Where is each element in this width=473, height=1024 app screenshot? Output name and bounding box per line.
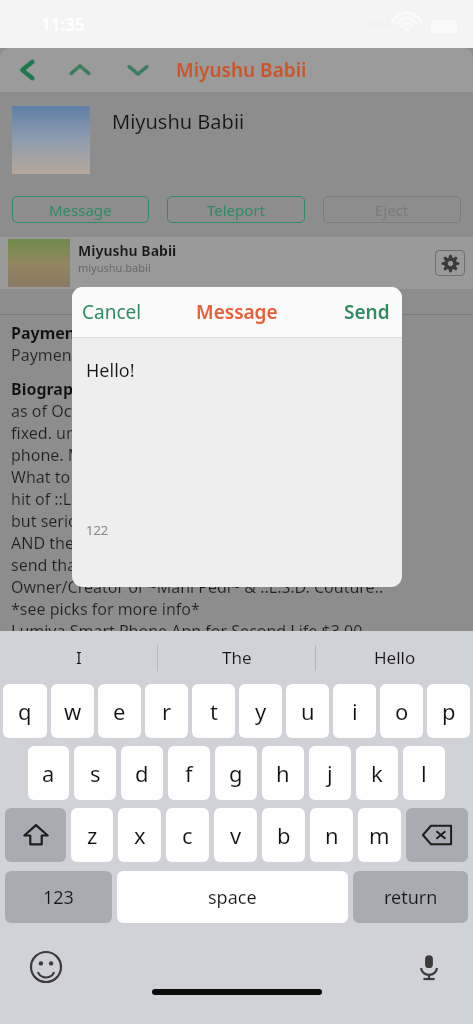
staticText: as of Oct 2016 my mic is broken, getting… — [11, 400, 327, 422]
staticText: n — [325, 820, 339, 850]
button[interactable]: x — [118, 808, 161, 862]
staticText: Lumiya Smart Phone App for Second Life $… — [11, 620, 363, 642]
button[interactable]: t — [192, 684, 235, 738]
button[interactable]: o — [380, 684, 423, 738]
staticText: hit of ::L.S.D. Couture:: - not a real d… — [11, 488, 303, 510]
button[interactable]: h — [262, 746, 304, 800]
button[interactable]: z — [71, 808, 113, 862]
button[interactable]: s — [74, 746, 116, 800]
staticText: 122 — [86, 521, 109, 539]
button[interactable]: Emoji — [30, 951, 62, 983]
button[interactable]: Settings — [435, 250, 465, 276]
button[interactable]: Message — [12, 196, 149, 223]
staticText: k — [371, 758, 383, 788]
button[interactable]: space — [117, 871, 348, 923]
staticText: p — [442, 696, 456, 726]
button[interactable]: i — [333, 684, 376, 738]
staticText: t — [210, 696, 218, 726]
button[interactable]: Back — [10, 53, 44, 87]
button[interactable]: l — [403, 746, 445, 800]
button[interactable]: Dictation — [415, 953, 443, 981]
staticText: Payment info on file — [11, 344, 162, 366]
button[interactable]: q — [3, 684, 47, 738]
button[interactable]: r — [145, 684, 188, 738]
staticText: x — [134, 820, 146, 850]
staticText: Miyushu Babii — [78, 241, 177, 260]
staticText: h — [276, 758, 290, 788]
button[interactable]: Picks — [215, 294, 245, 310]
staticText: u — [301, 696, 315, 726]
staticText: send that pic to your friends! — [11, 554, 228, 576]
button[interactable]: Eject — [323, 196, 461, 223]
staticText: Miyushu Babii — [176, 57, 307, 83]
button[interactable]: j — [309, 746, 351, 800]
button[interactable]: u — [286, 684, 329, 738]
staticText: Message — [49, 200, 112, 220]
staticText: i — [352, 696, 358, 726]
staticText: j — [327, 758, 333, 788]
staticText: z — [87, 820, 98, 850]
staticText: What to do if you're bored? Go and take … — [11, 466, 322, 488]
staticText: m — [369, 820, 390, 850]
button[interactable]: Send — [344, 299, 390, 325]
button[interactable]: Hello! — [72, 338, 402, 587]
staticText: Miyushu Babii — [112, 108, 245, 135]
staticText: r — [162, 696, 172, 726]
button[interactable]: Next — [121, 53, 155, 87]
button[interactable]: Groups — [337, 294, 380, 310]
button[interactable]: b — [262, 808, 305, 862]
staticText: *see picks for more info* — [11, 598, 200, 620]
button[interactable]: Previous — [63, 53, 97, 87]
staticText: but seriously fashionable stuff anyway — [11, 510, 299, 532]
button[interactable]: I — [0, 631, 157, 684]
staticText: Teleport — [207, 200, 265, 220]
staticText: Cancel — [82, 299, 142, 325]
button[interactable]: d — [121, 746, 163, 800]
staticText: Payments: — [11, 322, 95, 344]
button[interactable]: return — [353, 871, 468, 923]
button[interactable]: n — [310, 808, 353, 862]
staticText: 123 — [43, 885, 74, 910]
staticText: b — [277, 820, 291, 850]
button[interactable]: p — [427, 684, 470, 738]
staticText: phone. My number is in my profile. — [11, 444, 274, 466]
staticText: space — [208, 885, 257, 910]
staticText: miyushu.babii — [78, 260, 151, 275]
button[interactable]: a — [28, 746, 69, 800]
button[interactable]: f — [168, 746, 210, 800]
staticText: Send — [344, 299, 390, 325]
staticText: The — [222, 646, 252, 669]
staticText: g — [229, 758, 243, 788]
button[interactable]: w — [51, 684, 94, 738]
button[interactable]: Teleport — [167, 196, 305, 223]
staticText: fixed. until then IM me or call my cell — [11, 422, 287, 444]
staticText: Message — [196, 299, 278, 325]
button[interactable]: g — [215, 746, 257, 800]
staticText: AND then go get your nails done and — [11, 532, 290, 554]
staticText: y — [255, 696, 267, 726]
staticText: q — [18, 696, 32, 726]
button[interactable]: Shift — [5, 808, 66, 862]
staticText: return — [384, 885, 438, 910]
button[interactable]: v — [214, 808, 257, 862]
button[interactable]: Feed — [93, 294, 122, 310]
staticText: s — [90, 758, 101, 788]
staticText: Eject — [375, 200, 409, 220]
button[interactable]: k — [356, 746, 398, 800]
button[interactable]: Backspace — [406, 808, 468, 862]
staticText: I — [76, 646, 82, 669]
staticText: Hello — [374, 646, 416, 669]
button[interactable]: Hello — [316, 631, 473, 684]
button[interactable]: c — [166, 808, 209, 862]
staticText: o — [395, 696, 409, 726]
staticText: d — [135, 758, 149, 788]
staticText: e — [113, 696, 126, 726]
staticText: a — [42, 758, 55, 788]
button[interactable]: y — [239, 684, 282, 738]
button[interactable]: e — [98, 684, 141, 738]
button[interactable]: 123 — [5, 871, 112, 923]
staticText: f — [185, 758, 193, 788]
button[interactable]: m — [358, 808, 401, 862]
button[interactable]: Cancel — [82, 299, 142, 325]
button[interactable]: The — [158, 631, 315, 684]
